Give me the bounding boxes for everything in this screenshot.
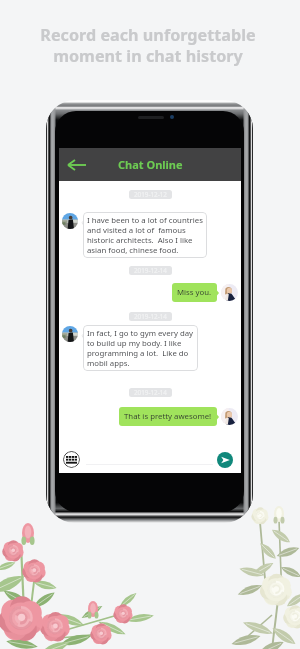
staticText: 2019-12-12 <box>134 190 167 199</box>
staticText: 2019-12-14 <box>134 312 167 321</box>
staticText: That is pretty awesome! <box>124 411 212 422</box>
button[interactable]: Keyboard <box>63 451 80 468</box>
button[interactable]: Send <box>217 452 233 468</box>
staticText: In fact, I go to gym every day to build … <box>87 328 194 368</box>
button[interactable]: Back <box>64 153 88 177</box>
staticText: I have been to a lot of countries and vi… <box>87 215 203 255</box>
staticText: Chat Online <box>118 157 183 172</box>
staticText: 2019-12-14 <box>134 388 167 397</box>
staticText: Miss you. <box>177 287 212 298</box>
staticText: 2019-12-14 <box>134 266 167 275</box>
staticText: Record each unforgettable moment in chat… <box>40 24 256 66</box>
